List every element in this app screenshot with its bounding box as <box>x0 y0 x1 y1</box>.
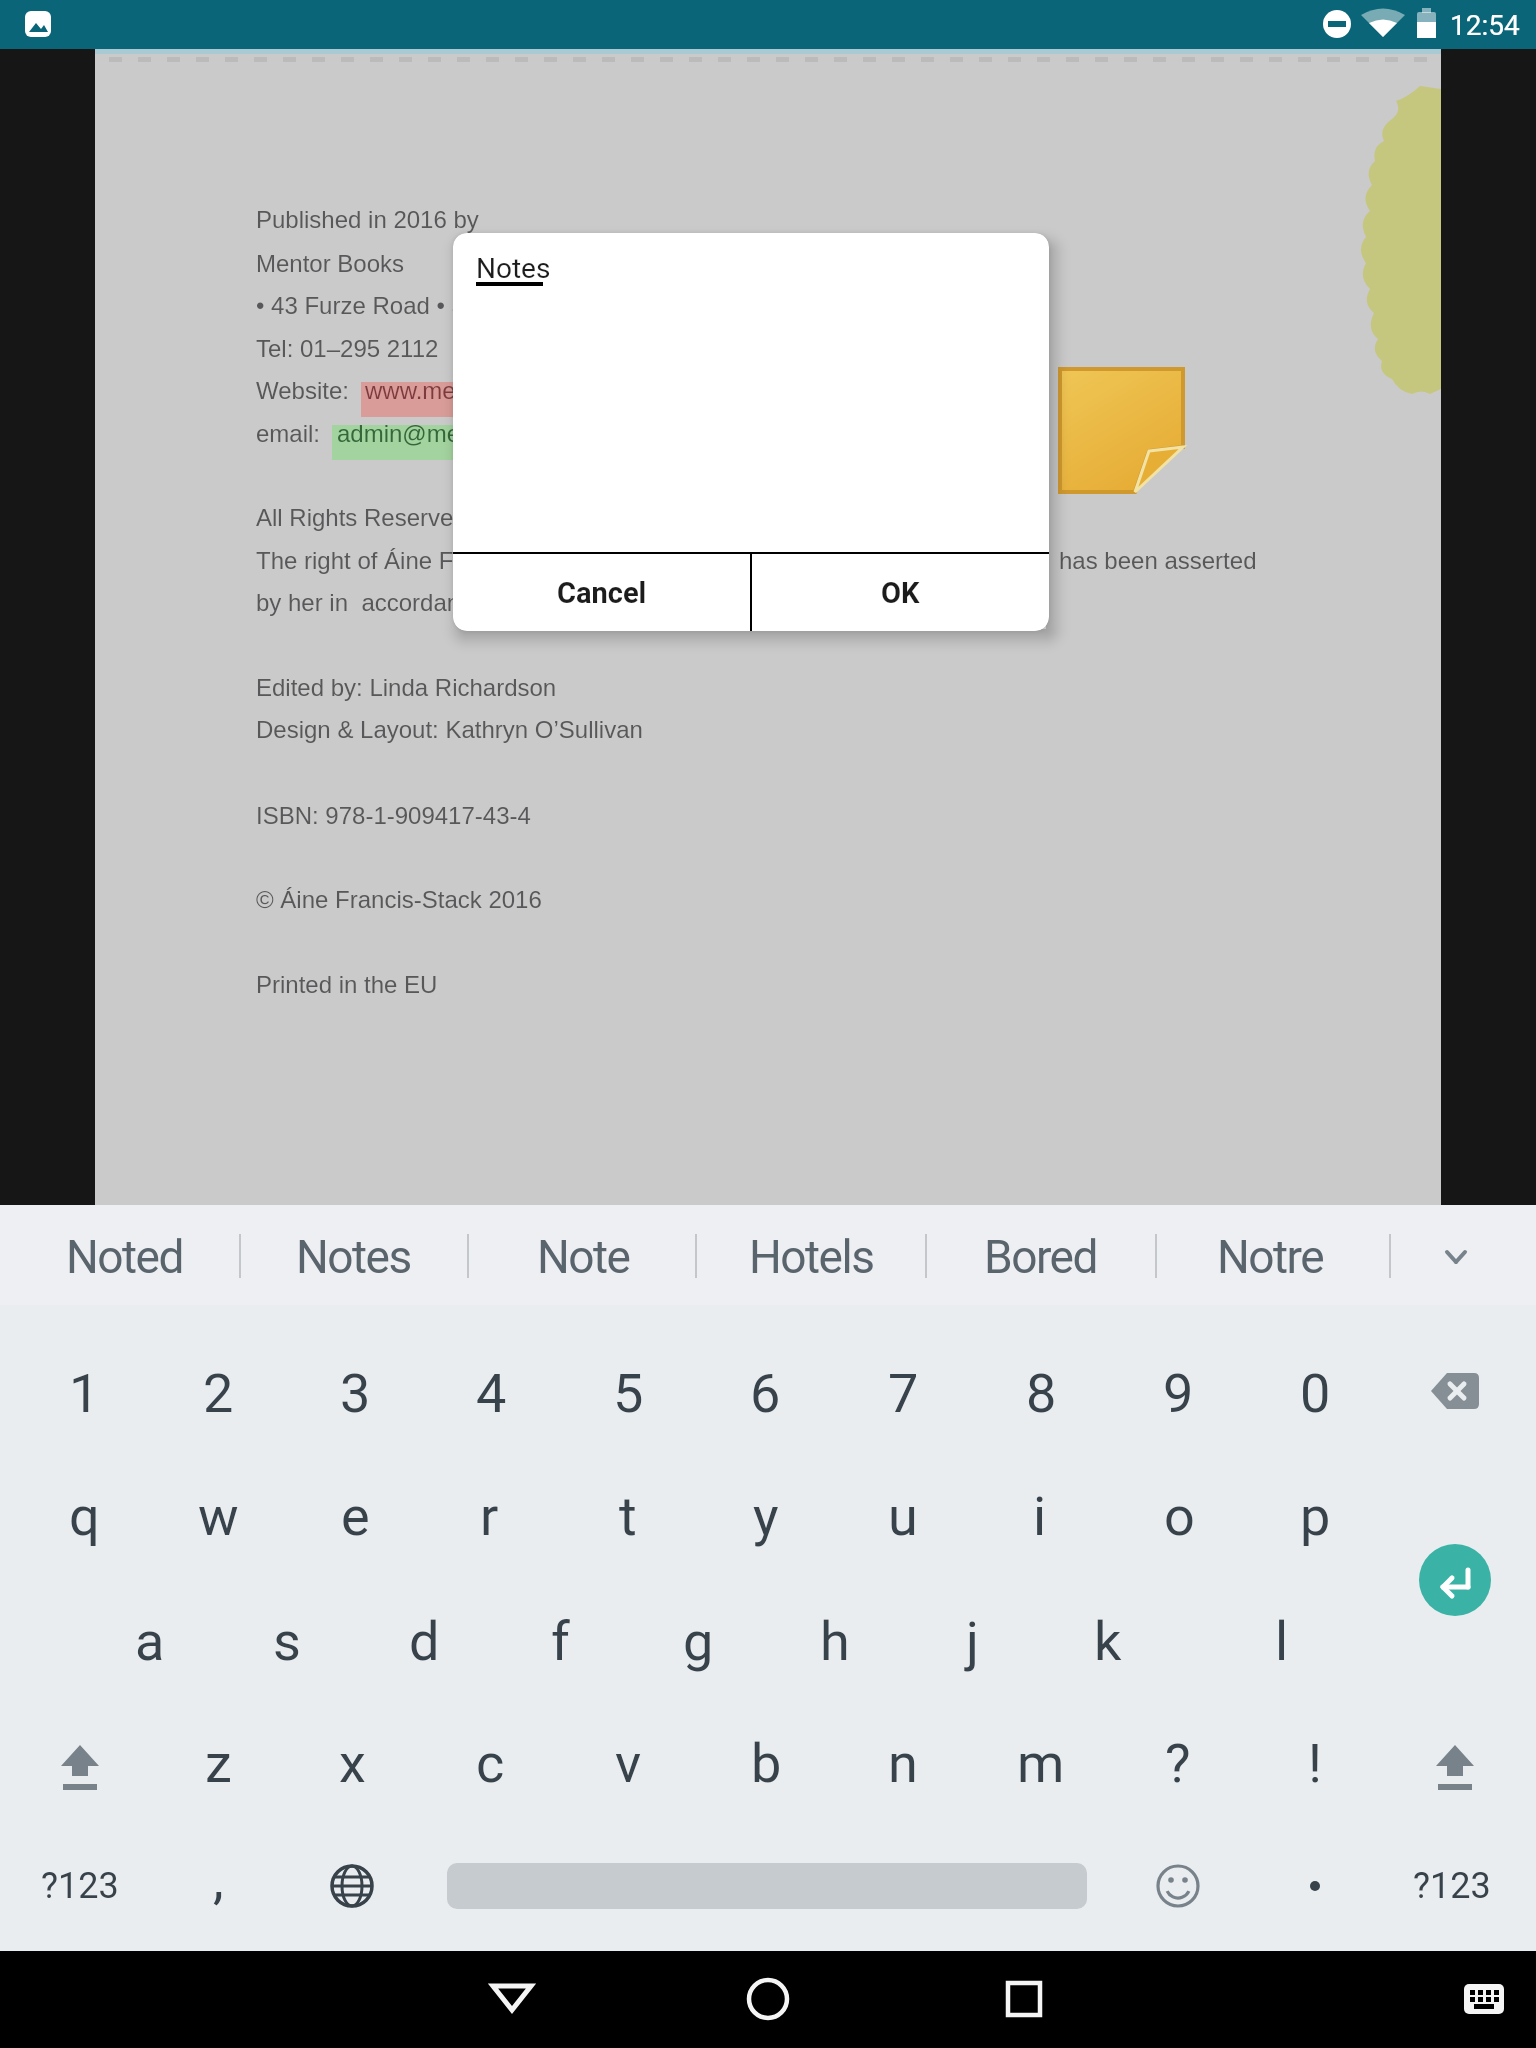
button[interactable]: Bored <box>950 1212 1130 1302</box>
button[interactable]: w <box>128 1471 308 1561</box>
staticText: Printed in the EU <box>256 971 438 998</box>
staticText: ! <box>1308 1732 1322 1795</box>
staticText: o <box>1164 1485 1195 1548</box>
button[interactable]: 9 <box>1088 1348 1268 1438</box>
staticText: ?123 <box>1413 1865 1491 1907</box>
staticText: e <box>341 1485 370 1548</box>
staticText: ?123 <box>41 1865 119 1907</box>
button[interactable]: Noted <box>34 1212 214 1302</box>
staticText: www.mentorbooks.ie <box>365 377 587 404</box>
staticText: b <box>751 1732 782 1795</box>
button[interactable]: d <box>334 1596 514 1686</box>
button[interactable]: Notre <box>1180 1212 1360 1302</box>
button[interactable]: ?123 <box>0 1841 170 1931</box>
staticText: Edited by: Linda Richardson <box>256 674 557 701</box>
staticText: Tel: 01–295 2112 <box>256 335 439 362</box>
staticText: Mentor Books <box>256 250 405 277</box>
button[interactable]: 7 <box>813 1348 993 1438</box>
staticText: y <box>753 1485 779 1548</box>
button[interactable] <box>984 1959 1064 2039</box>
button[interactable]: g <box>608 1596 788 1686</box>
button[interactable]: ?123 <box>1362 1841 1536 1931</box>
staticText: OK <box>881 576 920 610</box>
button[interactable]: x <box>262 1718 442 1808</box>
staticText: a <box>135 1610 165 1673</box>
button[interactable] <box>1454 1969 1514 2029</box>
button[interactable]: t <box>538 1471 718 1561</box>
button[interactable]: l <box>1192 1596 1372 1686</box>
staticText: d <box>409 1610 440 1673</box>
staticText: r <box>480 1485 499 1548</box>
button[interactable]: v <box>538 1718 718 1808</box>
staticText: v <box>615 1732 642 1795</box>
staticText: p <box>1300 1485 1331 1548</box>
button[interactable]: 5 <box>538 1348 718 1438</box>
button[interactable]: Note <box>493 1212 673 1302</box>
staticText: Notre <box>1217 1230 1324 1284</box>
button[interactable] <box>472 1959 552 2039</box>
staticText: 9 <box>1163 1362 1194 1425</box>
button[interactable] <box>728 1959 808 2039</box>
staticText: by her in accordance with the Copyright … <box>256 589 737 616</box>
button[interactable]: ! <box>1225 1718 1405 1808</box>
staticText: Notes <box>296 1230 411 1284</box>
button[interactable]: e <box>265 1471 445 1561</box>
button[interactable]: , <box>128 1834 308 1924</box>
button[interactable]: p <box>1225 1471 1405 1561</box>
staticText: email: <box>256 420 321 447</box>
staticText: Cancel <box>557 576 647 610</box>
button[interactable]: n <box>813 1718 993 1808</box>
button[interactable]: 1 <box>0 1348 174 1438</box>
button[interactable]: Hotels <box>721 1212 901 1302</box>
button[interactable]: 8 <box>951 1348 1131 1438</box>
button[interactable]: k <box>1018 1596 1198 1686</box>
button[interactable]: 2 <box>128 1348 308 1438</box>
button[interactable]: y <box>676 1471 856 1561</box>
button[interactable]: s <box>197 1596 377 1686</box>
button[interactable] <box>1419 1544 1491 1616</box>
staticText: m <box>1017 1732 1065 1795</box>
staticText: 2 <box>203 1362 234 1425</box>
staticText: k <box>1094 1610 1122 1673</box>
button[interactable]: Notes <box>263 1212 443 1302</box>
staticText: 8 <box>1026 1362 1057 1425</box>
button[interactable]: h <box>745 1596 925 1686</box>
staticText: , <box>213 1848 224 1911</box>
staticText: The right of Áine Francis-Stack to be id… <box>256 547 749 574</box>
button[interactable]: o <box>1089 1471 1269 1561</box>
staticText: Website: <box>256 377 349 404</box>
button[interactable]: c <box>400 1718 580 1808</box>
staticText: 1 <box>69 1362 100 1425</box>
button[interactable]: i <box>950 1471 1130 1561</box>
button[interactable]: 3 <box>265 1348 445 1438</box>
button[interactable]: f <box>470 1596 650 1686</box>
button[interactable]: q <box>0 1471 174 1561</box>
button[interactable]: 6 <box>675 1348 855 1438</box>
staticText: w <box>198 1485 239 1548</box>
staticText: 7 <box>888 1362 919 1425</box>
button[interactable]: ? <box>1088 1718 1268 1808</box>
button[interactable]: m <box>951 1718 1131 1808</box>
staticText: q <box>69 1485 100 1548</box>
staticText: h <box>820 1610 850 1673</box>
button[interactable]: j <box>882 1596 1062 1686</box>
staticText: c <box>476 1732 505 1795</box>
staticText: x <box>339 1732 366 1795</box>
staticText: l <box>1275 1610 1289 1673</box>
staticText: s <box>273 1610 301 1673</box>
staticText: 3 <box>340 1362 371 1425</box>
staticText: • 43 Furze Road • Sandyford Industrial E… <box>256 292 740 319</box>
button[interactable]: 0 <box>1225 1348 1405 1438</box>
staticText: i <box>1033 1485 1047 1548</box>
staticText: ? <box>1165 1732 1191 1795</box>
button[interactable]: Cancel <box>453 554 750 631</box>
button[interactable]: b <box>676 1718 856 1808</box>
button[interactable]: a <box>60 1596 240 1686</box>
staticText: All Rights Reserved. No part of this pub… <box>256 504 751 531</box>
button[interactable]: OK <box>752 554 1049 631</box>
button[interactable]: z <box>128 1718 308 1808</box>
button[interactable]: 4 <box>401 1348 581 1438</box>
button[interactable]: r <box>399 1471 579 1561</box>
button[interactable]: u <box>813 1471 993 1561</box>
